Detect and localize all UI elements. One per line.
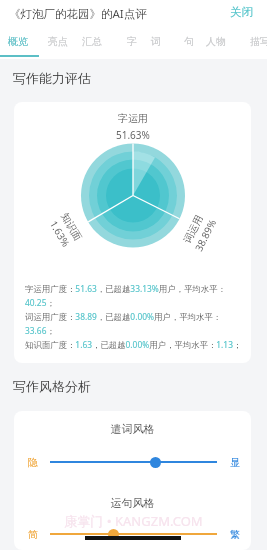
staticText: 人物 bbox=[206, 35, 226, 48]
staticText: 词运用 bbox=[181, 213, 206, 245]
staticText: 遣词风格 bbox=[14, 422, 251, 436]
button[interactable]: Slider handle bbox=[150, 457, 161, 468]
staticText: 1.63% bbox=[48, 218, 74, 249]
staticText: 简 bbox=[28, 528, 38, 541]
staticText: 繁 bbox=[230, 528, 240, 541]
staticText: 写作风格分析 bbox=[13, 378, 91, 394]
button[interactable]: 字 bbox=[121, 31, 143, 52]
staticText: 关闭 bbox=[230, 5, 253, 19]
staticText: 38.89% bbox=[191, 217, 218, 253]
staticText: 字 bbox=[127, 35, 137, 48]
staticText: 《灯泡厂的花园》的AI点评 bbox=[9, 6, 147, 22]
staticText: 亮点 bbox=[48, 35, 68, 48]
staticText: 描写 bbox=[250, 35, 267, 48]
button[interactable]: 汇总 bbox=[76, 31, 108, 52]
staticText: 写作能力评估 bbox=[13, 70, 91, 86]
button[interactable]: 描写 bbox=[244, 31, 267, 52]
staticText: 康掌门 • KANGZM.COM bbox=[0, 512, 267, 530]
staticText: 字运用 bbox=[118, 112, 148, 125]
staticText: 词 bbox=[151, 35, 161, 48]
staticText: 51.63% bbox=[116, 128, 150, 142]
button[interactable]: Slider handle bbox=[108, 529, 119, 540]
button[interactable]: 关闭 bbox=[222, 0, 261, 24]
staticText: 知识面广度：1.63，已超越0.00%用户，平均水平：1.13； bbox=[25, 339, 242, 350]
button[interactable]: 词 bbox=[145, 31, 167, 52]
staticText: 知识面 bbox=[58, 210, 85, 243]
staticText: 句 bbox=[184, 35, 194, 48]
staticText: 词运用广度：38.89，已超越0.00%用户，平均水平：33.66； bbox=[25, 311, 242, 336]
button[interactable]: 概览 bbox=[2, 31, 34, 52]
button[interactable]: 亮点 bbox=[42, 31, 74, 52]
staticText: 概览 bbox=[8, 35, 28, 48]
button[interactable]: 句 bbox=[178, 31, 200, 52]
staticText: 运句风格 bbox=[14, 496, 251, 510]
staticText: 显 bbox=[230, 456, 240, 469]
staticText: 汇总 bbox=[82, 35, 102, 48]
staticText: 隐 bbox=[28, 456, 38, 469]
button[interactable]: 人物 bbox=[200, 31, 232, 52]
staticText: 字运用广度：51.63，已超越33.13%用户，平均水平：40.25； bbox=[25, 283, 242, 308]
